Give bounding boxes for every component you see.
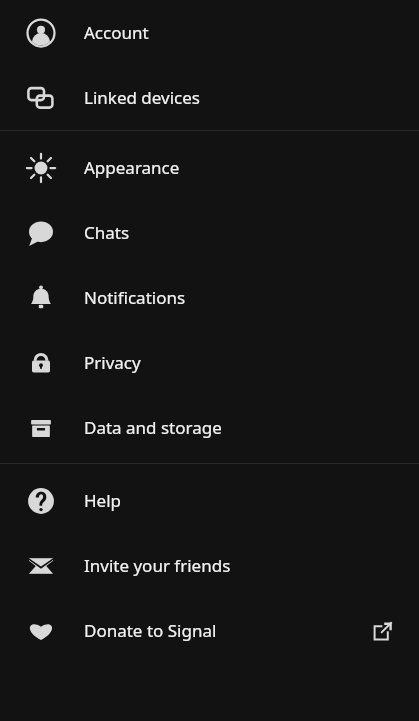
staticText: Appearance [84, 156, 403, 179]
button[interactable]: Linked devices [0, 65, 419, 130]
button[interactable]: Notifications [0, 265, 419, 330]
button[interactable]: Chats [0, 200, 419, 265]
staticText: Invite your friends [84, 554, 403, 577]
button[interactable]: Privacy [0, 330, 419, 395]
staticText: Notifications [84, 286, 403, 309]
staticText: Account [84, 21, 403, 44]
staticText: Linked devices [84, 86, 403, 109]
button[interactable]: Account [0, 0, 419, 65]
button[interactable]: Appearance [0, 135, 419, 200]
button[interactable]: Data and storage [0, 395, 419, 460]
button[interactable]: Donate to Signal [0, 598, 419, 663]
staticText: Help [84, 489, 403, 512]
staticText: Privacy [84, 351, 403, 374]
button[interactable]: Help [0, 468, 419, 533]
button[interactable]: Opens in external browser [359, 607, 407, 655]
button[interactable]: Invite your friends [0, 533, 419, 598]
staticText: Chats [84, 221, 403, 244]
staticText: Donate to Signal [84, 619, 359, 642]
staticText: Data and storage [84, 416, 403, 439]
